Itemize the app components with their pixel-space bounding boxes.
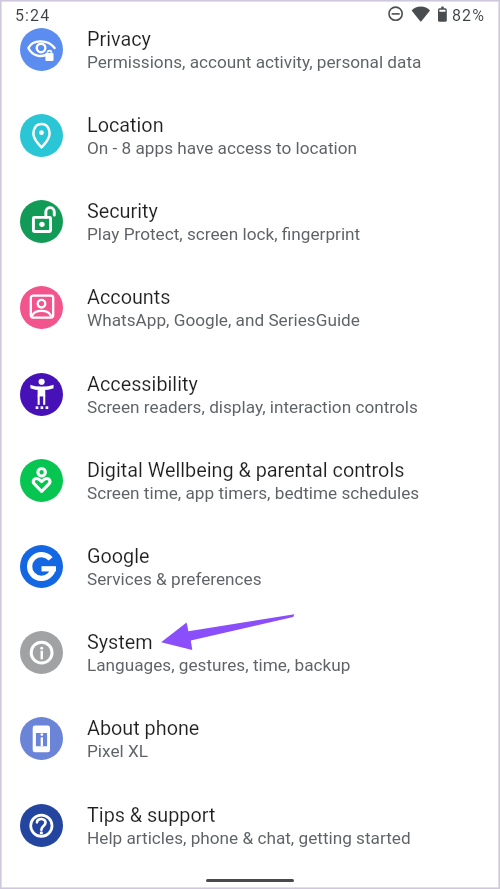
button[interactable]: Google	[0, 523, 500, 609]
button[interactable]: Accessibility	[0, 351, 500, 437]
button[interactable]: Security	[0, 178, 500, 264]
staticText: Pixel XL	[87, 741, 148, 761]
staticText: Google	[87, 545, 150, 568]
button[interactable]: Accounts	[0, 264, 500, 350]
staticText: 5:24	[15, 6, 51, 25]
staticText: Play Protect, screen lock, fingerprint	[87, 224, 361, 244]
staticText: Services & preferences	[87, 569, 262, 589]
staticText: Tips & support	[87, 804, 216, 827]
other: Home	[206, 879, 294, 882]
staticText: Digital Wellbeing & parental controls	[87, 459, 405, 482]
other: Status icons	[380, 0, 490, 25]
staticText: Privacy	[87, 28, 151, 51]
staticText: Languages, gestures, time, backup	[87, 655, 351, 675]
staticText: 82%	[452, 6, 486, 25]
staticText: Accounts	[87, 286, 171, 309]
staticText: Screen time, app timers, bedtime schedul…	[87, 483, 420, 503]
staticText: Permissions, account activity, personal …	[87, 52, 422, 72]
button[interactable]: About phone	[0, 695, 500, 781]
button[interactable]: Location	[0, 92, 500, 178]
staticText: Security	[87, 200, 158, 223]
staticText: Help articles, phone & chat, getting sta…	[87, 828, 411, 848]
staticText: System	[87, 631, 153, 654]
button[interactable]: Digital Wellbeing & parental controls	[0, 437, 500, 523]
button[interactable]: Tips & support	[0, 782, 500, 868]
staticText: Accessibility	[87, 373, 198, 396]
staticText: WhatsApp, Google, and SeriesGuide	[87, 310, 360, 330]
button[interactable]: Privacy	[0, 6, 500, 92]
button[interactable]: System	[0, 609, 500, 695]
staticText: Screen readers, display, interaction con…	[87, 397, 418, 417]
staticText: Location	[87, 114, 164, 137]
staticText: On - 8 apps have access to location	[87, 138, 357, 158]
staticText: About phone	[87, 717, 200, 740]
